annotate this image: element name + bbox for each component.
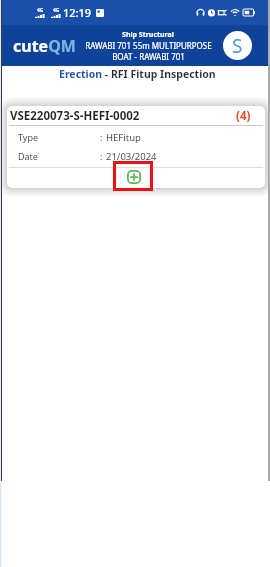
staticText: 4G — [37, 7, 44, 14]
staticText: : — [100, 131, 103, 143]
staticText: HEFitup — [106, 131, 141, 144]
staticText: RAWABI 701 55m MULTIPURPOSE — [85, 40, 212, 51]
staticText: S — [232, 33, 243, 59]
button[interactable]: Profile — [223, 31, 252, 60]
staticText: (4) — [236, 108, 251, 124]
staticText: Date — [18, 150, 38, 162]
staticText: 21/03/2024 — [106, 150, 157, 163]
staticText: Type — [18, 131, 39, 143]
staticText: Erection - RFI Fitup Inspection — [59, 67, 216, 81]
staticText: VSE220073-S-HEFI-0002 — [10, 108, 140, 124]
staticText: cuteQM — [13, 35, 76, 57]
button[interactable]: VSE220073-S-HEFI-0002 — [7, 106, 265, 188]
staticText: : — [100, 150, 103, 162]
staticText: BOAT - RAWABI 701 — [112, 51, 185, 62]
button[interactable]: Add — [113, 161, 153, 191]
staticText: Ship Structural — [122, 30, 174, 40]
staticText: 12:19 — [63, 5, 92, 20]
staticText: 4G — [53, 7, 60, 14]
